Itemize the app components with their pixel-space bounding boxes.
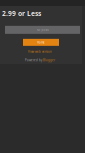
button[interactable]: Blogger (43, 58, 55, 62)
staticText: Powered by (25, 58, 42, 62)
button[interactable]: View web version (28, 50, 52, 53)
staticText: 2.99 or Less (2, 9, 41, 18)
staticText: No posts (36, 28, 48, 32)
staticText: Home (37, 41, 45, 44)
button[interactable]: Home (23, 39, 59, 46)
staticText: Blogger (43, 58, 55, 62)
staticText: View web version (28, 50, 52, 53)
